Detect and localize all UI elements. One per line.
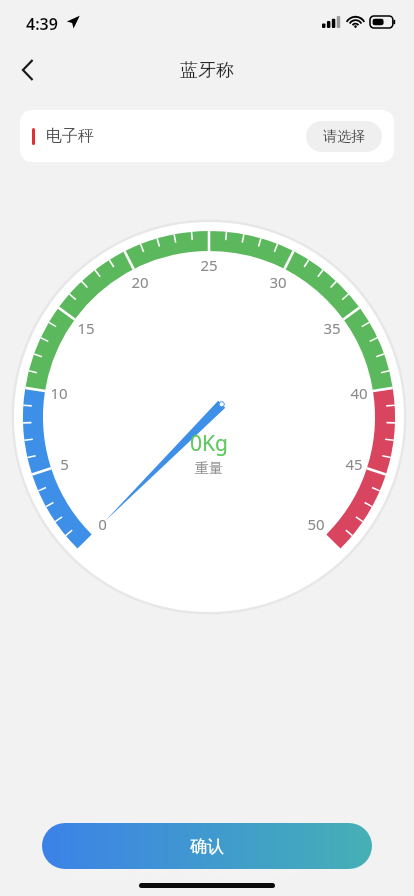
staticText: 15 — [77, 318, 95, 338]
staticText: 请选择 — [323, 128, 365, 146]
staticText: 10 — [50, 383, 68, 403]
button[interactable]: 电子秤 — [20, 110, 394, 162]
button[interactable]: 请选择 — [306, 121, 382, 152]
staticText: 25 — [200, 255, 218, 275]
staticText: 晶膳后下载 CYLEDU.COM — [75, 856, 303, 882]
staticText: 5 — [60, 454, 69, 474]
staticText: 重量 — [195, 460, 223, 478]
staticText: 确认 — [190, 836, 224, 857]
staticText: 0 — [98, 514, 107, 534]
staticText: 45 — [345, 454, 363, 474]
staticText: 50 — [307, 514, 325, 534]
staticText: 0Kg — [190, 429, 228, 458]
staticText: 4:39 — [26, 13, 58, 35]
staticText: 30 — [269, 272, 287, 292]
staticText: 40 — [350, 383, 368, 403]
staticText: 电子秤 — [46, 126, 94, 146]
staticText: 20 — [131, 272, 149, 292]
button[interactable]: Back — [6, 48, 50, 92]
button[interactable]: 确认 — [42, 823, 372, 869]
staticText: 35 — [323, 318, 341, 338]
staticText: 蓝牙称 — [180, 59, 234, 82]
